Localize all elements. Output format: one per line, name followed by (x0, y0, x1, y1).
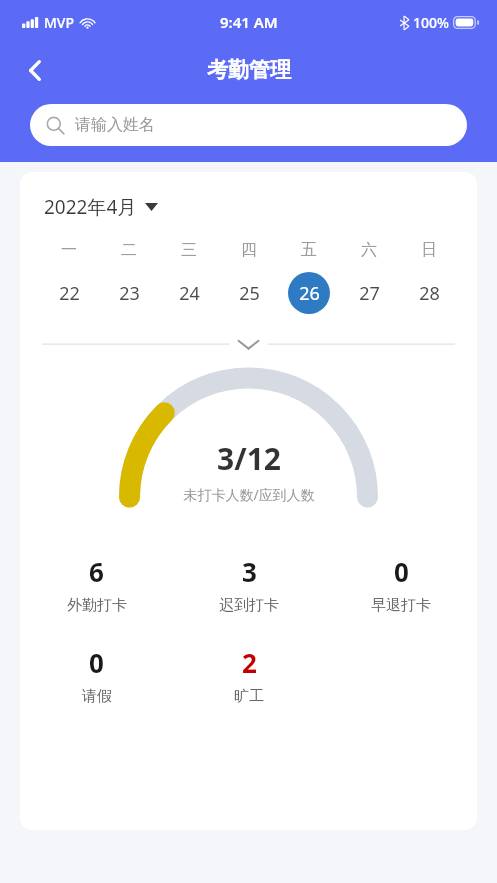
staticText: 考勤管理 (207, 57, 291, 83)
button[interactable]: 3 (173, 554, 325, 615)
staticText: 0 (89, 645, 104, 680)
button[interactable]: Expand calendar (20, 334, 477, 356)
staticText: 一 (61, 240, 77, 260)
staticText: 2022年4月 (44, 194, 137, 220)
staticText: 五 (301, 240, 317, 260)
button[interactable]: 27 (348, 272, 390, 314)
staticText: 26 (299, 281, 320, 306)
staticText: 四 (241, 240, 257, 260)
button[interactable]: 23 (108, 272, 150, 314)
button[interactable]: 2022年4月 (44, 194, 158, 220)
button[interactable]: 24 (168, 272, 210, 314)
staticText: 迟到打卡 (219, 596, 279, 615)
button[interactable]: 6 (20, 554, 173, 615)
staticText: 3/12 (217, 438, 281, 479)
staticText: 100% (413, 13, 449, 32)
staticText: 请输入姓名 (75, 115, 155, 135)
staticText: MVP (44, 13, 75, 32)
staticText: 六 (361, 240, 377, 260)
staticText: 25 (239, 281, 260, 306)
button[interactable]: 0 (20, 645, 173, 706)
staticText: 9:41 AM (220, 12, 278, 32)
button[interactable]: 26 (288, 272, 330, 314)
staticText: 2 (242, 645, 257, 680)
staticText: 22 (59, 281, 80, 306)
button[interactable]: Back (12, 47, 58, 93)
staticText: 6 (89, 554, 104, 589)
staticText: 27 (359, 281, 380, 306)
staticText: 28 (419, 281, 440, 306)
staticText: 二 (121, 240, 137, 260)
staticText: 日 (421, 240, 437, 260)
staticText: 外勤打卡 (67, 596, 127, 615)
staticText: 三 (181, 240, 197, 260)
button[interactable]: 22 (48, 272, 90, 314)
staticText: 未打卡人数/应到人数 (183, 485, 315, 504)
staticText: 24 (179, 281, 200, 306)
button[interactable]: 28 (408, 272, 450, 314)
button[interactable]: 2 (173, 645, 325, 706)
staticText: 3 (242, 554, 257, 589)
button[interactable]: 请输入姓名 (30, 104, 467, 146)
button[interactable]: 25 (228, 272, 270, 314)
staticText: 旷工 (234, 687, 264, 706)
staticText: 0 (394, 554, 409, 589)
staticText: 早退打卡 (371, 596, 431, 615)
staticText: 23 (119, 281, 140, 306)
button[interactable]: 0 (325, 554, 477, 615)
staticText: 请假 (82, 687, 112, 706)
